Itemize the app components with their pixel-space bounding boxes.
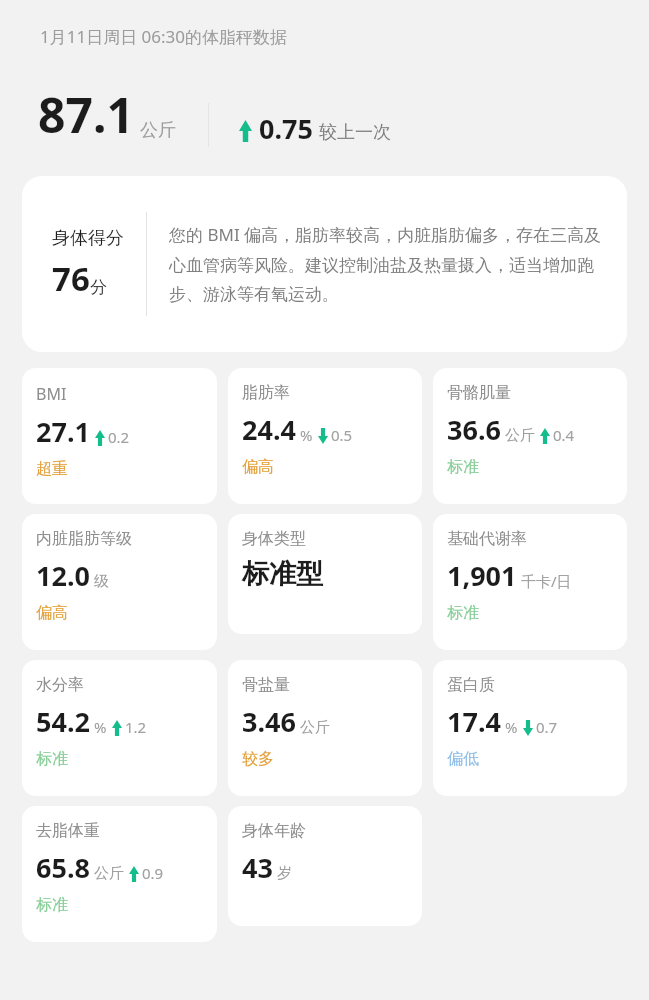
- staticText: 0.75: [259, 110, 313, 147]
- staticText: 超重: [36, 459, 68, 479]
- staticText: 偏高: [242, 457, 274, 477]
- button[interactable]: 水分率: [22, 660, 217, 796]
- staticText: 54.2: [36, 703, 90, 740]
- button[interactable]: 内脏脂肪等级: [22, 514, 217, 650]
- button[interactable]: 基础代谢率: [433, 514, 627, 650]
- staticText: 偏高: [36, 603, 68, 623]
- staticText: 17.4: [447, 703, 501, 740]
- staticText: BMI: [36, 383, 67, 405]
- staticText: 岁: [277, 864, 292, 883]
- staticText: 87.1: [38, 82, 134, 147]
- staticText: %: [505, 717, 518, 737]
- button[interactable]: 脂肪率: [228, 368, 422, 504]
- staticText: 骨骼肌量: [447, 383, 511, 403]
- staticText: 12.0: [36, 557, 90, 594]
- staticText: 身体类型: [242, 529, 306, 549]
- staticText: 较上一次: [319, 121, 391, 144]
- staticText: 1,901: [447, 557, 517, 594]
- staticText: 27.1: [36, 413, 90, 450]
- staticText: 千卡/日: [521, 571, 572, 591]
- staticText: 43: [242, 849, 273, 886]
- staticText: 76: [52, 256, 90, 301]
- staticText: 公斤: [94, 864, 124, 883]
- staticText: 分: [90, 277, 107, 298]
- staticText: 标准: [447, 457, 479, 477]
- button[interactable]: 骨骼肌量: [433, 368, 627, 504]
- staticText: 级: [94, 572, 109, 591]
- button[interactable]: 去脂体重: [22, 806, 217, 942]
- staticText: 65.8: [36, 849, 90, 886]
- staticText: 蛋白质: [447, 675, 495, 695]
- staticText: 脂肪率: [242, 383, 290, 403]
- staticText: 身体年龄: [242, 821, 306, 841]
- staticText: 0.7: [536, 717, 558, 737]
- staticText: 0.9: [142, 863, 164, 883]
- staticText: 3.46: [242, 703, 296, 740]
- staticText: %: [94, 717, 107, 737]
- staticText: 标准: [447, 603, 479, 623]
- button[interactable]: 身体年龄: [228, 806, 422, 926]
- staticText: 1.2: [125, 717, 147, 737]
- button[interactable]: 蛋白质: [433, 660, 627, 796]
- staticText: 偏低: [447, 749, 479, 769]
- staticText: 较多: [242, 749, 274, 769]
- staticText: 公斤: [300, 718, 330, 737]
- staticText: 身体得分: [52, 227, 124, 250]
- staticText: 0.5: [331, 425, 353, 445]
- staticText: 0.4: [553, 425, 575, 445]
- staticText: %: [300, 425, 313, 445]
- staticText: 公斤: [505, 426, 535, 445]
- staticText: 基础代谢率: [447, 529, 527, 549]
- staticText: 标准: [36, 895, 68, 915]
- staticText: 36.6: [447, 411, 501, 448]
- staticText: 1月11日周日 06:30的体脂秤数据: [40, 25, 288, 48]
- button[interactable]: BMI: [22, 368, 217, 504]
- staticText: 0.2: [108, 427, 130, 447]
- staticText: 去脂体重: [36, 821, 100, 841]
- button[interactable]: 身体得分: [22, 176, 627, 352]
- staticText: 公斤: [140, 119, 176, 142]
- staticText: 骨盐量: [242, 675, 290, 695]
- staticText: 您的 BMI 偏高，脂肪率较高，内脏脂肪偏多，存在三高及心血管病等风险。建议控制…: [169, 223, 613, 305]
- staticText: 水分率: [36, 675, 84, 695]
- staticText: 24.4: [242, 411, 296, 448]
- staticText: 标准型: [242, 557, 323, 591]
- button[interactable]: 骨盐量: [228, 660, 422, 796]
- button[interactable]: 身体类型: [228, 514, 422, 634]
- staticText: 标准: [36, 749, 68, 769]
- staticText: 内脏脂肪等级: [36, 529, 132, 549]
